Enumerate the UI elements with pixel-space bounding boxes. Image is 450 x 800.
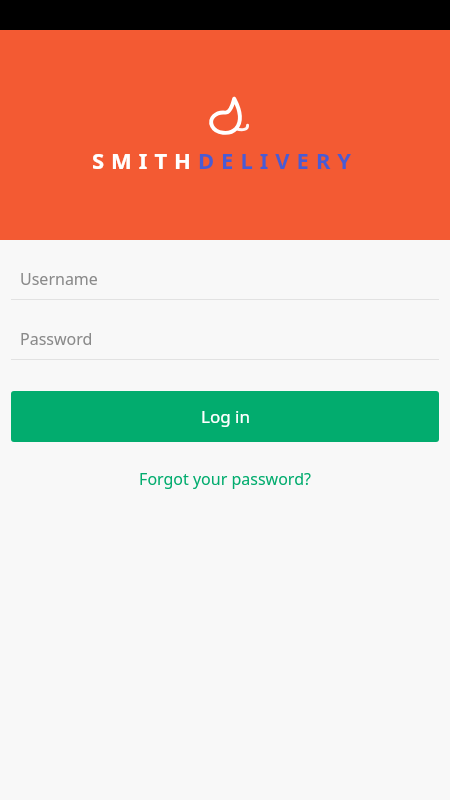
other: Smith Delivery logo: [202, 95, 248, 137]
button[interactable]: Password: [0, 327, 450, 360]
staticText: Log in: [201, 405, 250, 428]
button[interactable]: Log in: [11, 391, 439, 442]
button[interactable]: Forgot your password?: [127, 464, 323, 494]
staticText: Password: [20, 328, 93, 350]
staticText: SMITH: [92, 145, 198, 175]
button[interactable]: Username: [0, 267, 450, 300]
staticText: Username: [20, 268, 98, 290]
staticText: Forgot your password?: [139, 468, 311, 490]
staticText: DELIVERY: [198, 145, 359, 175]
